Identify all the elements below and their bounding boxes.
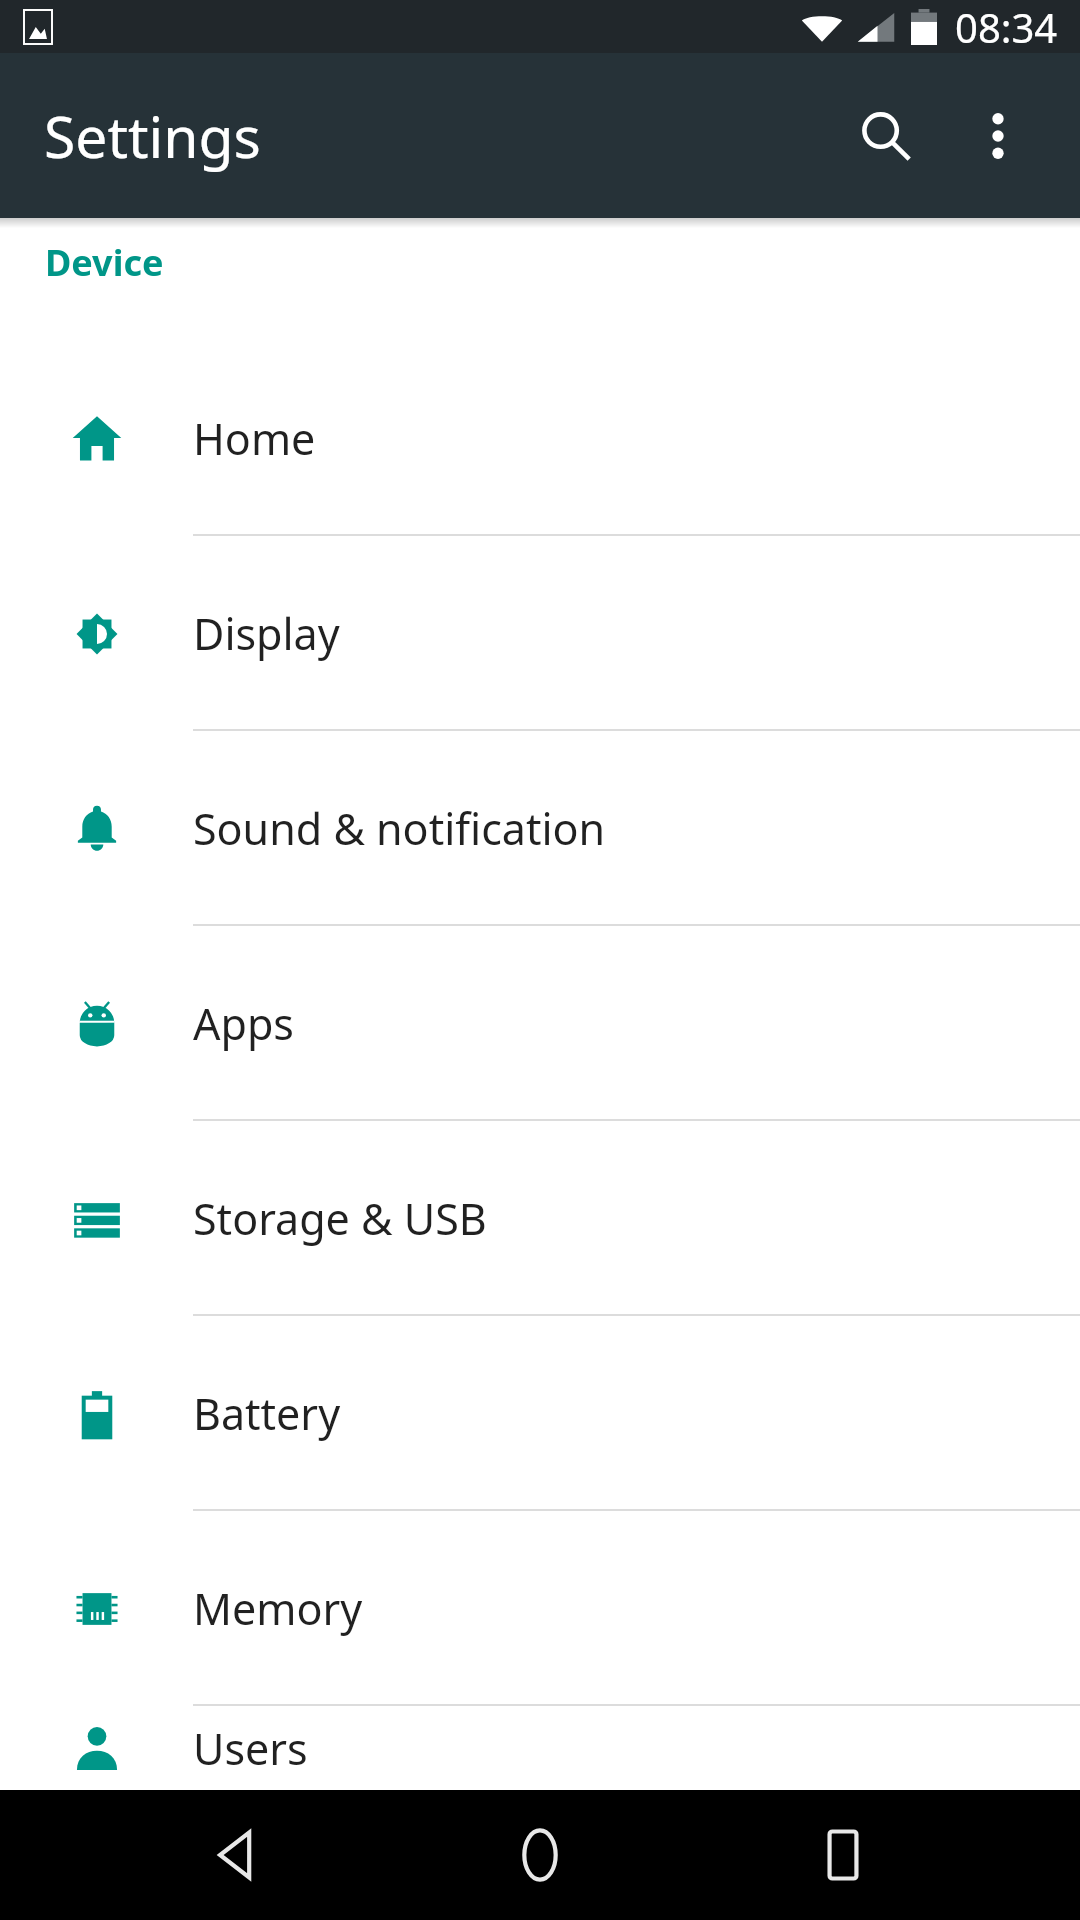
staticText: Storage & USB	[193, 1189, 487, 1248]
staticText: Users	[193, 1719, 308, 1778]
button[interactable]: Battery	[0, 1316, 1080, 1511]
button[interactable]: Users	[0, 1706, 1080, 1790]
button[interactable]: Back	[173, 1790, 303, 1920]
staticText: Memory	[193, 1579, 363, 1638]
staticText: Settings	[44, 97, 261, 175]
staticText: Sound & notification	[193, 799, 606, 858]
button[interactable]: Apps	[0, 926, 1080, 1121]
button[interactable]: Home	[475, 1790, 605, 1920]
staticText: 08:34	[955, 0, 1058, 53]
staticText: Device	[45, 238, 164, 287]
staticText: Battery	[193, 1384, 341, 1443]
button[interactable]: Recent apps	[778, 1790, 908, 1920]
button[interactable]: Display	[0, 536, 1080, 731]
button[interactable]: Sound & notification	[0, 731, 1080, 926]
button[interactable]: More options	[942, 80, 1054, 192]
staticText: Display	[193, 604, 340, 663]
button[interactable]: Memory	[0, 1511, 1080, 1706]
staticText: Home	[193, 409, 316, 468]
button[interactable]: Search	[830, 80, 942, 192]
staticText: Apps	[193, 994, 294, 1053]
button[interactable]: Storage & USB	[0, 1121, 1080, 1316]
button[interactable]: Home	[0, 341, 1080, 536]
